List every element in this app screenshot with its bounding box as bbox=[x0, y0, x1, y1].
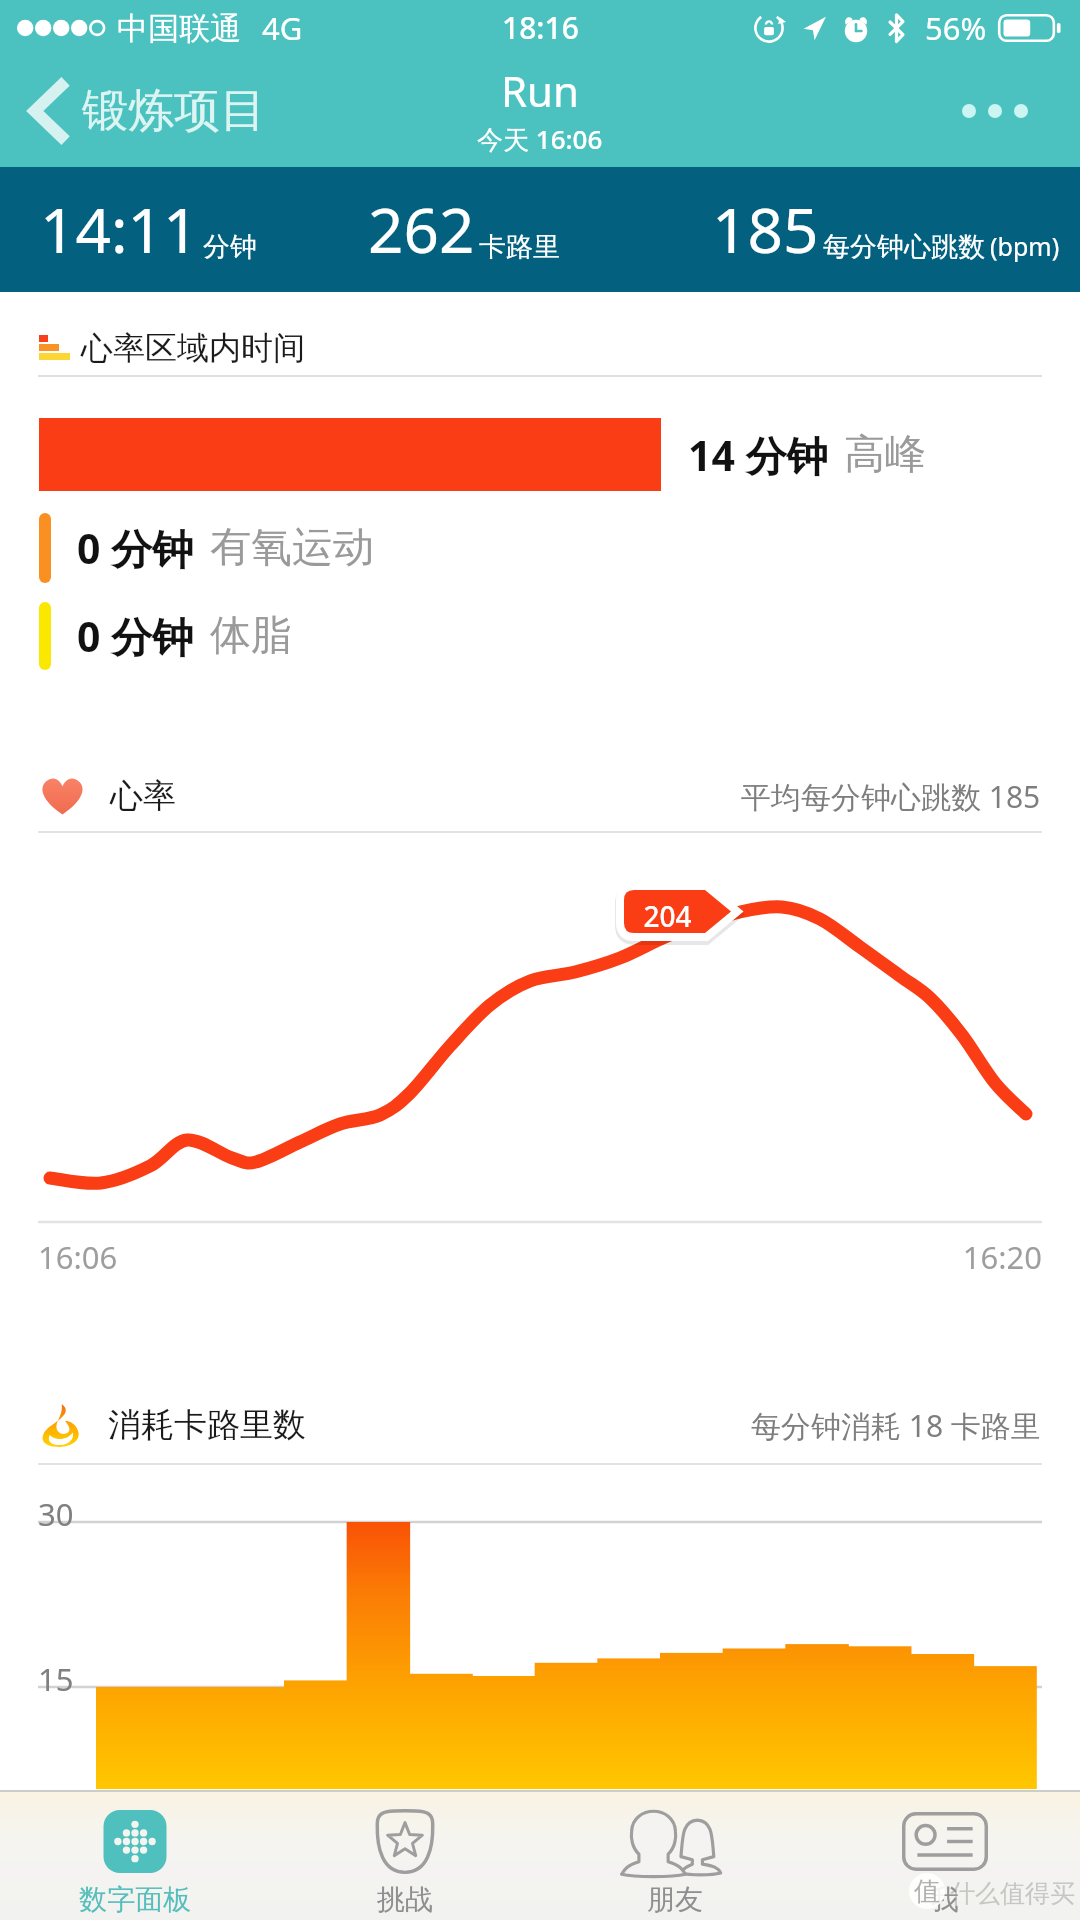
staticText: 每分钟心跳数 bbox=[823, 230, 985, 264]
button[interactable]: Back bbox=[0, 55, 286, 167]
staticText: 我 bbox=[931, 1882, 959, 1917]
other: Back bbox=[30, 82, 64, 140]
staticText: 18:16 bbox=[502, 7, 579, 48]
staticText: 数字面板 bbox=[79, 1882, 191, 1917]
staticText: 30 bbox=[38, 1493, 74, 1535]
staticText: 56% bbox=[925, 7, 987, 49]
staticText: 消耗卡路里数 bbox=[108, 1404, 306, 1446]
staticText: 体脂 bbox=[210, 610, 292, 662]
staticText: 每分钟消耗 18 卡路里 bbox=[751, 1405, 1041, 1446]
staticText: 14 分钟 bbox=[688, 427, 828, 483]
staticText: 锻炼项目 bbox=[82, 82, 266, 140]
staticText: 平均每分钟心跳数 185 bbox=[741, 776, 1041, 817]
staticText: 朋友 bbox=[647, 1882, 703, 1917]
staticText: 挑战 bbox=[377, 1882, 433, 1917]
staticText: 14:11 bbox=[40, 187, 199, 271]
button[interactable]: 我 bbox=[810, 1792, 1080, 1920]
staticText: 什么值得买 bbox=[950, 1878, 1075, 1909]
staticText: 185 bbox=[712, 187, 819, 271]
staticText: 卡路里 bbox=[479, 230, 560, 264]
staticText: 高峰 bbox=[844, 429, 926, 481]
staticText: 心率区域内时间 bbox=[81, 328, 305, 368]
button[interactable]: 0 分钟 bbox=[0, 602, 1080, 670]
staticText: 16:20 bbox=[900, 1236, 1042, 1278]
staticText: 分钟 bbox=[203, 230, 257, 264]
staticText: 今天 16:06 bbox=[477, 121, 603, 157]
button[interactable]: More options bbox=[942, 55, 1080, 167]
staticText: 值 bbox=[914, 1875, 940, 1908]
staticText: 262 bbox=[368, 187, 475, 271]
button[interactable]: 心率 bbox=[0, 765, 1080, 827]
staticText: 16:06 bbox=[38, 1236, 118, 1278]
staticText: 15 bbox=[38, 1658, 74, 1700]
button[interactable]: 挑战 bbox=[270, 1792, 540, 1920]
button[interactable]: 数字面板 bbox=[0, 1792, 270, 1920]
staticText: 4G bbox=[262, 7, 303, 49]
button[interactable]: 消耗卡路里数 bbox=[0, 1390, 1080, 1460]
staticText: 有氧运动 bbox=[210, 522, 374, 574]
button[interactable]: 0 分钟 bbox=[0, 513, 1080, 583]
button[interactable]: 心率区域内时间 bbox=[0, 320, 1080, 375]
staticText: 204 bbox=[624, 897, 711, 935]
staticText: 0 分钟 bbox=[77, 608, 194, 664]
staticText: 心率 bbox=[110, 775, 176, 817]
staticText: 中国联通 bbox=[117, 9, 241, 48]
staticText: (bpm) bbox=[990, 229, 1060, 263]
staticText: Run bbox=[501, 62, 580, 119]
staticText: 0 分钟 bbox=[77, 520, 194, 576]
button[interactable]: 14 分钟 bbox=[0, 418, 1080, 491]
button[interactable]: 朋友 bbox=[540, 1792, 810, 1920]
